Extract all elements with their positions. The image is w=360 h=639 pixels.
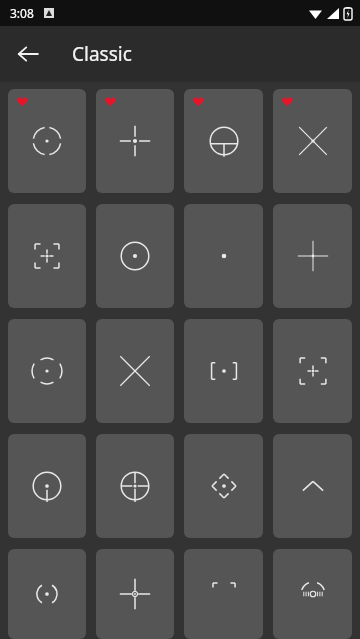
button[interactable]: Reticle 13 — [8, 434, 86, 538]
button[interactable]: Reticle 18 — [96, 549, 174, 639]
button[interactable]: Reticle 1 — [8, 89, 86, 193]
button[interactable]: Reticle 15 — [184, 434, 263, 538]
button[interactable]: Reticle 10 — [96, 319, 174, 423]
staticText: Classic — [72, 41, 132, 67]
button[interactable]: Reticle 7 — [184, 204, 263, 308]
button[interactable]: Reticle 8 — [273, 204, 352, 308]
button[interactable]: Reticle 11 — [184, 319, 263, 423]
button[interactable]: Reticle 20 — [273, 549, 352, 639]
button[interactable]: Reticle 16 — [273, 434, 352, 538]
button[interactable]: Back — [6, 32, 50, 76]
button[interactable]: Reticle 4 — [273, 89, 352, 193]
button[interactable]: Reticle 5 — [8, 204, 86, 308]
button[interactable]: Reticle 12 — [273, 319, 352, 423]
button[interactable]: Reticle 6 — [96, 204, 174, 308]
staticText: 3:08 — [10, 5, 34, 21]
button[interactable]: Reticle 3 — [184, 89, 263, 193]
button[interactable]: Reticle 14 — [96, 434, 174, 538]
button[interactable]: Reticle 17 — [8, 549, 86, 639]
button[interactable]: Reticle 19 — [184, 549, 263, 639]
button[interactable]: Reticle 9 — [8, 319, 86, 423]
button[interactable]: Reticle 2 — [96, 89, 174, 193]
